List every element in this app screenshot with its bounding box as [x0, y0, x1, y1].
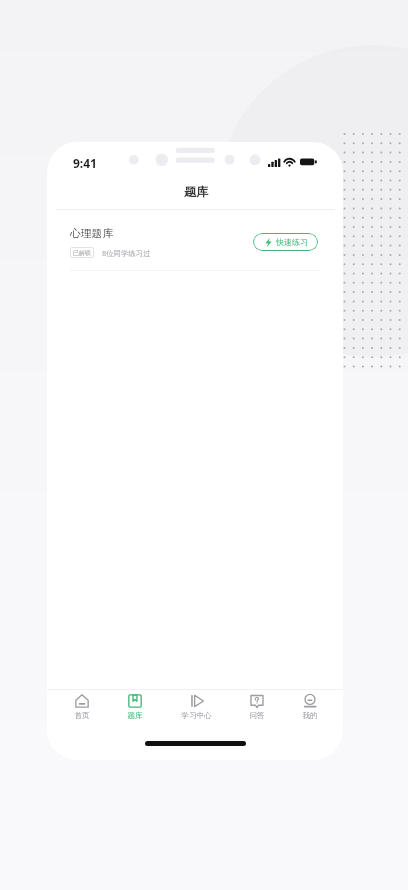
- staticText: 9:41: [73, 155, 97, 171]
- button[interactable]: 学习中心: [181, 690, 212, 721]
- staticText: 我的: [302, 711, 318, 721]
- staticText: 学习中心: [181, 711, 212, 721]
- staticText: 8位同学练习过: [102, 248, 151, 258]
- staticText: 问答: [249, 711, 265, 721]
- button[interactable]: 快速练习: [253, 233, 318, 251]
- staticText: 题库: [127, 711, 143, 721]
- button[interactable]: 问答: [249, 690, 265, 721]
- staticText: 题库: [184, 184, 208, 199]
- staticText: 已解锁: [73, 249, 91, 256]
- button[interactable]: 题库: [127, 690, 143, 721]
- staticText: 心理题库: [70, 227, 114, 241]
- staticText: 快速练习: [276, 237, 308, 247]
- staticText: 首页: [74, 711, 90, 721]
- button[interactable]: 首页: [74, 690, 90, 721]
- button[interactable]: 我的: [302, 690, 318, 721]
